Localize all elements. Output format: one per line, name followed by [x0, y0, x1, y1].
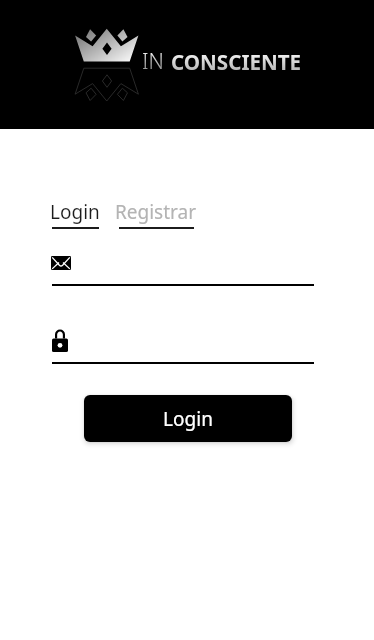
button[interactable]: Registrar [115, 199, 197, 229]
staticText: Registrar [115, 199, 197, 225]
other: Password [52, 331, 68, 352]
staticText: Login [50, 199, 100, 225]
staticText: Login [163, 406, 213, 432]
staticText: CONSCIENTE [171, 48, 302, 76]
button[interactable]: Login [84, 395, 292, 442]
staticText: IN [142, 47, 164, 76]
other: Email [51, 256, 71, 270]
button[interactable]: Login [50, 199, 100, 229]
